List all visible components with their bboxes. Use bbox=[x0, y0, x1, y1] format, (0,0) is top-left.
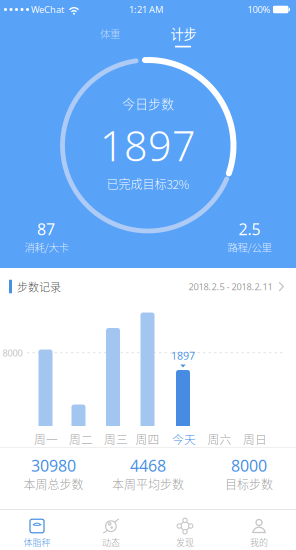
staticText: 体重 bbox=[100, 26, 120, 41]
staticText: 今日步数 bbox=[122, 94, 174, 112]
staticText: 8000 bbox=[231, 455, 267, 476]
staticText: 87 bbox=[37, 218, 55, 240]
staticText: 周日 bbox=[243, 430, 267, 447]
staticText: 周六 bbox=[207, 430, 231, 447]
staticText: 8000 bbox=[2, 347, 22, 359]
staticText: 周四 bbox=[135, 430, 159, 447]
staticText: WeChat bbox=[31, 3, 64, 16]
button[interactable]: 2018.2.5 - 2018.2.11 bbox=[188, 280, 284, 293]
staticText: 今天 bbox=[172, 430, 196, 447]
button[interactable]: 发现 bbox=[148, 510, 222, 550]
staticText: 计步 bbox=[170, 24, 196, 43]
staticText: 目标步数 bbox=[225, 475, 273, 493]
staticText: 已完成目标32% bbox=[106, 175, 189, 192]
staticText: 1:21 AM bbox=[129, 3, 163, 16]
staticText: 我的 bbox=[250, 535, 268, 548]
button[interactable]: 体重 bbox=[82, 21, 138, 45]
staticText: 2018.2.5 - 2018.2.11 bbox=[188, 280, 272, 293]
button[interactable]: 计步 bbox=[155, 21, 211, 45]
staticText: 路程/公里 bbox=[227, 239, 271, 255]
button[interactable]: 体脂秤 bbox=[0, 510, 74, 550]
staticText: 4468 bbox=[130, 455, 166, 476]
staticText: 步数记录 bbox=[17, 279, 61, 294]
staticText: 100% bbox=[247, 3, 270, 16]
staticText: 周三 bbox=[104, 430, 128, 447]
button[interactable]: 动态 bbox=[74, 510, 148, 550]
staticText: 本周平均步数 bbox=[112, 475, 184, 493]
staticText: 体脂秤 bbox=[23, 535, 50, 548]
staticText: 动态 bbox=[102, 535, 120, 548]
staticText: 1897 bbox=[100, 118, 196, 173]
staticText: 1897 bbox=[171, 348, 195, 363]
staticText: 周二 bbox=[69, 430, 93, 447]
staticText: 30980 bbox=[31, 455, 76, 476]
staticText: 本周总步数 bbox=[23, 475, 83, 493]
staticText: 2.5 bbox=[238, 218, 260, 240]
staticText: 消耗/大卡 bbox=[24, 239, 68, 255]
staticText: 周一 bbox=[34, 430, 58, 447]
button[interactable]: 我的 bbox=[222, 510, 296, 550]
staticText: 发现 bbox=[176, 535, 194, 548]
